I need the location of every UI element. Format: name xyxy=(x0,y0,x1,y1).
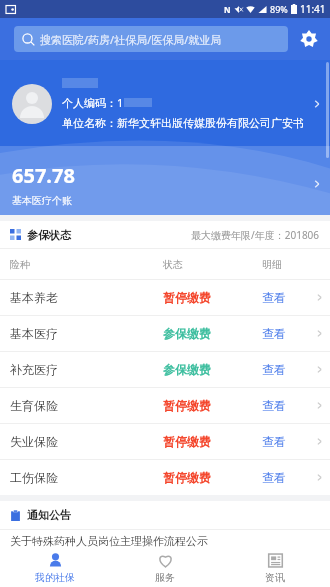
button[interactable]: 基本医疗 xyxy=(0,316,330,351)
staticText: 单位名称：新华文轩出版传媒股份有限公司广安书城 xyxy=(62,116,304,130)
staticText: 搜索医院/药房/社保局/医保局/就业局 xyxy=(40,32,222,47)
staticText: 暂停缴费 xyxy=(163,398,211,413)
button[interactable]: 个人编码：1 xyxy=(0,60,330,148)
staticText: 查看 xyxy=(262,326,286,341)
button[interactable]: Settings xyxy=(288,18,330,60)
button[interactable]: 生育保险 xyxy=(0,388,330,423)
staticText: 状态 xyxy=(163,258,183,271)
staticText: 参保缴费 xyxy=(163,326,211,341)
button[interactable]: 补充医疗 xyxy=(0,352,330,387)
staticText: 服务 xyxy=(155,571,175,584)
button[interactable]: 我的社保 xyxy=(0,548,110,587)
staticText: 89% xyxy=(270,3,288,15)
staticText: 最大缴费年限/年度：201806 xyxy=(191,228,320,242)
staticText: 关于特殊药种人员岗位主理操作流程公示 xyxy=(10,534,208,548)
staticText: 基本养老 xyxy=(10,290,58,305)
staticText: 暂停缴费 xyxy=(163,470,211,485)
staticText: 查看 xyxy=(262,290,286,305)
button[interactable]: 关于特殊药种人员岗位主理操作流程公示 xyxy=(10,530,330,552)
button[interactable]: 资讯 xyxy=(220,548,330,587)
staticText: 基本医疗个账 xyxy=(12,194,72,207)
staticText: 失业保险 xyxy=(10,434,58,449)
staticText: 我的社保 xyxy=(35,571,75,584)
staticText: N xyxy=(224,4,231,15)
staticText: 657.78 xyxy=(12,162,75,189)
staticText: 补充医疗 xyxy=(10,362,58,377)
button[interactable]: 工伤保险 xyxy=(0,460,330,495)
button[interactable]: 657.78 xyxy=(0,153,330,215)
staticText: 个人编码：1 xyxy=(62,95,124,110)
staticText: 工伤保险 xyxy=(10,470,58,485)
staticText: 险种 xyxy=(10,258,30,271)
staticText: 明细 xyxy=(262,258,282,271)
staticText: 查看 xyxy=(262,398,286,413)
staticText: 资讯 xyxy=(265,571,285,584)
button[interactable]: 服务 xyxy=(110,548,220,587)
staticText: 11:41 xyxy=(300,2,326,16)
button[interactable]: 失业保险 xyxy=(0,424,330,459)
staticText: 查看 xyxy=(262,362,286,377)
staticText: 暂停缴费 xyxy=(163,290,211,305)
staticText: 暂停缴费 xyxy=(163,434,211,449)
staticText: 基本医疗 xyxy=(10,326,58,341)
staticText: 查看 xyxy=(262,470,286,485)
staticText: 参保缴费 xyxy=(163,362,211,377)
staticText: 查看 xyxy=(262,434,286,449)
staticText: 通知公告 xyxy=(27,508,71,522)
staticText: 参保状态 xyxy=(27,228,71,242)
staticText: 生育保险 xyxy=(10,398,58,413)
button[interactable]: 基本养老 xyxy=(0,280,330,315)
button[interactable]: 搜索医院/药房/社保局/医保局/就业局 xyxy=(14,26,288,52)
